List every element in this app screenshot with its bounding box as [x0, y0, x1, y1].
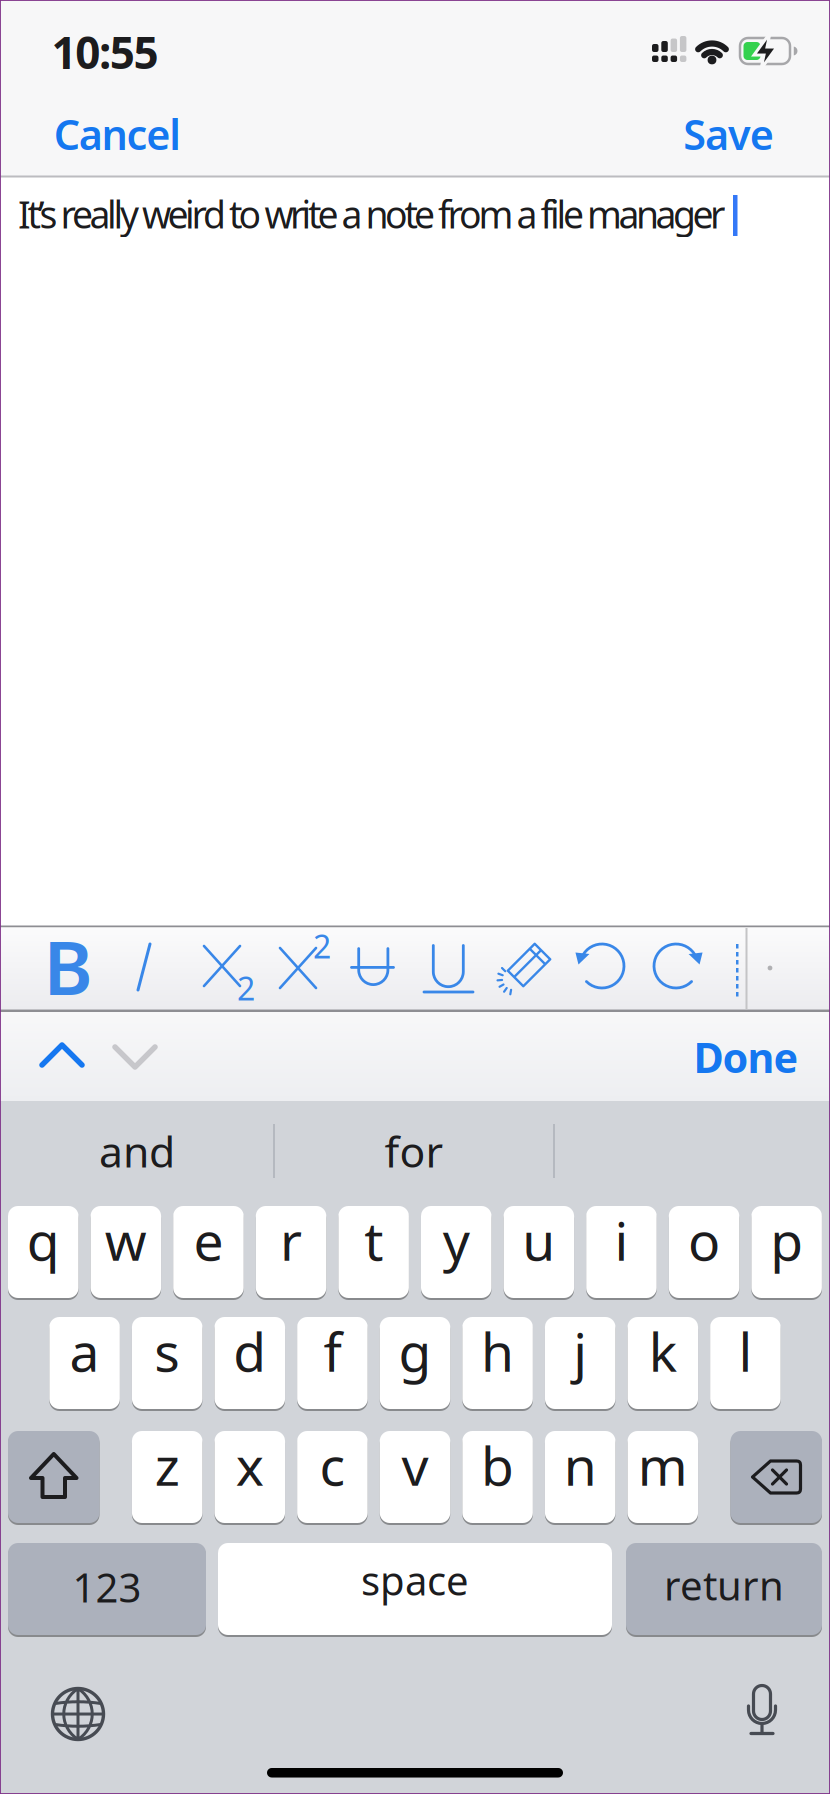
button[interactable]: p: [751, 1206, 822, 1298]
button[interactable]: Done: [693, 1030, 798, 1084]
staticText: B: [43, 916, 92, 1016]
button[interactable]: Strikethrough: [341, 930, 405, 1002]
staticText: c: [319, 1430, 345, 1500]
staticText: w: [105, 1205, 147, 1275]
staticText: r: [280, 1205, 302, 1275]
staticText: o: [688, 1205, 720, 1275]
staticText: n: [564, 1430, 597, 1500]
button[interactable]: space: [218, 1543, 612, 1635]
staticText: h: [481, 1316, 514, 1386]
staticText: 123: [72, 1560, 141, 1613]
staticText: g: [398, 1316, 431, 1386]
staticText: m: [638, 1430, 688, 1500]
button[interactable]: t: [338, 1206, 409, 1298]
button[interactable]: b: [462, 1431, 533, 1523]
button[interactable]: j: [545, 1317, 615, 1409]
staticText: d: [233, 1316, 266, 1386]
staticText: x: [236, 1430, 264, 1500]
button[interactable]: a: [49, 1317, 120, 1409]
button[interactable]: u: [504, 1206, 574, 1298]
button[interactable]: Redo: [645, 930, 709, 1002]
staticText: space: [361, 1553, 469, 1606]
button[interactable]: 123: [8, 1543, 206, 1635]
button[interactable]: Italic: [112, 930, 176, 1002]
staticText: return: [664, 1558, 784, 1611]
button[interactable]: s: [132, 1317, 202, 1409]
button[interactable]: Undo: [569, 930, 633, 1002]
button[interactable]: Superscript: [266, 930, 330, 1002]
staticText: y: [443, 1205, 470, 1275]
button[interactable]: i: [586, 1206, 657, 1298]
button[interactable]: e: [173, 1206, 244, 1298]
button[interactable]: z: [132, 1431, 202, 1523]
button[interactable]: return: [626, 1543, 822, 1635]
button[interactable]: q: [8, 1206, 78, 1298]
button[interactable]: and: [17, 1111, 257, 1191]
button[interactable]: Delete: [730, 1431, 822, 1523]
staticText: k: [649, 1316, 677, 1386]
button[interactable]: d: [214, 1317, 285, 1409]
button[interactable]: r: [256, 1206, 326, 1298]
button[interactable]: c: [297, 1431, 368, 1523]
button[interactable]: g: [380, 1317, 450, 1409]
button[interactable]: v: [380, 1431, 450, 1523]
staticText: 2: [313, 925, 331, 967]
staticText: u: [522, 1205, 555, 1275]
button[interactable]: l: [710, 1317, 781, 1409]
button[interactable]: h: [462, 1317, 533, 1409]
staticText: i: [614, 1205, 628, 1275]
staticText: t: [364, 1205, 383, 1275]
button[interactable]: Save: [683, 107, 774, 161]
button[interactable]: Underline: [417, 930, 481, 1002]
button[interactable]: x: [214, 1431, 285, 1523]
staticText: q: [27, 1205, 60, 1275]
button[interactable]: n: [545, 1431, 615, 1523]
staticText: Done: [693, 1030, 798, 1084]
button[interactable]: m: [627, 1431, 698, 1523]
button[interactable]: o: [669, 1206, 739, 1298]
staticText: v: [401, 1430, 428, 1500]
staticText: j: [573, 1316, 587, 1386]
button[interactable]: w: [91, 1206, 161, 1298]
staticText: Cancel: [54, 107, 181, 161]
button[interactable]: Previous field: [36, 1041, 88, 1071]
staticText: b: [481, 1430, 514, 1500]
button[interactable]: Shift: [8, 1431, 99, 1523]
button[interactable]: k: [627, 1317, 698, 1409]
staticText: l: [738, 1316, 752, 1386]
staticText: for: [384, 1123, 443, 1179]
button[interactable]: for: [294, 1111, 534, 1191]
button[interactable]: f: [297, 1317, 368, 1409]
button[interactable]: Subscript: [190, 930, 254, 1002]
staticText: f: [323, 1316, 341, 1386]
button[interactable]: Next keyboard: [43, 1679, 113, 1749]
staticText: 10:55: [51, 23, 159, 81]
staticText: 2: [237, 967, 255, 1009]
button[interactable]: Dictate: [727, 1679, 797, 1749]
staticText: It’s really weird to write a note from a…: [18, 189, 725, 239]
button[interactable]: Cancel: [54, 107, 181, 161]
staticText: e: [193, 1205, 223, 1275]
staticText: Save: [683, 107, 774, 161]
button[interactable]: Erase formatting: [489, 930, 561, 1002]
staticText: z: [155, 1430, 180, 1500]
button[interactable]: y: [421, 1206, 491, 1298]
button[interactable]: Bold: [36, 930, 100, 1002]
staticText: and: [99, 1123, 175, 1179]
button[interactable]: Next field: [109, 1043, 161, 1073]
staticText: s: [154, 1316, 180, 1386]
staticText: p: [770, 1205, 803, 1275]
staticText: a: [70, 1316, 100, 1386]
